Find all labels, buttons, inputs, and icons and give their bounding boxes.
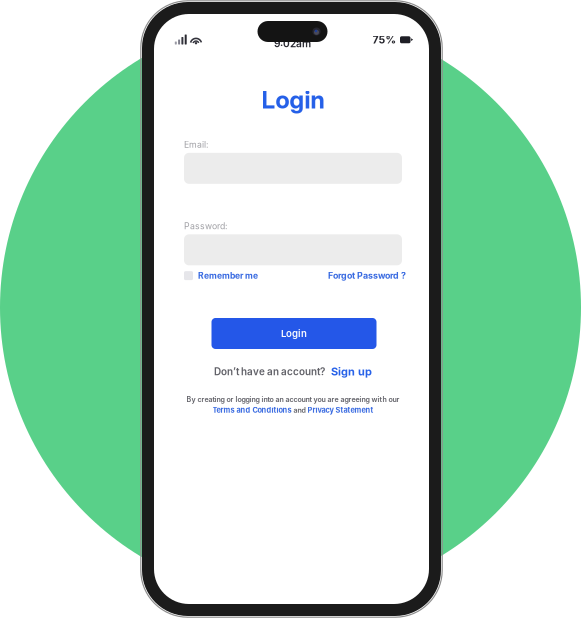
staticText: Login [281,328,307,339]
staticText: Privacy Statement [307,406,373,415]
button[interactable]: Sign up [331,365,372,378]
button[interactable]: Privacy Statement [307,406,373,415]
button[interactable]: Login [211,318,376,349]
staticText: Forgot Password ? [328,270,406,281]
staticText: Terms and Conditions [212,406,291,415]
staticText: Password: [184,221,227,231]
staticText: Don’t have an account? [214,366,325,377]
staticText: Email: [184,139,208,150]
staticText: Login [261,85,324,114]
staticText: By creating or logging into an account y… [186,395,399,404]
staticText: Remember me [198,270,258,281]
staticText: 9:02am [274,37,311,50]
button[interactable]: Terms and Conditions [212,406,291,415]
button[interactable]: Forgot Password ? [328,270,406,281]
staticText: 75% [372,33,396,46]
staticText: Sign up [331,365,372,378]
button[interactable]: Remember me [184,270,258,281]
staticText: and [291,406,307,414]
